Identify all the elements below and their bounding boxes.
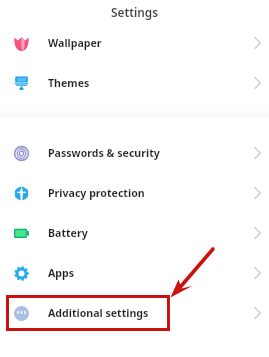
staticText: Privacy protection xyxy=(48,186,145,200)
button[interactable]: Apps xyxy=(0,253,269,293)
staticText: Battery xyxy=(48,226,88,240)
staticText: Settings xyxy=(111,4,159,20)
button[interactable]: Additional settings xyxy=(0,293,269,333)
button[interactable]: Themes xyxy=(0,63,269,103)
staticText: Themes xyxy=(48,76,90,90)
staticText: Wallpaper xyxy=(48,36,102,50)
button[interactable]: Privacy protection xyxy=(0,173,269,213)
staticText: Passwords & security xyxy=(48,146,160,160)
staticText: Additional settings xyxy=(48,306,149,320)
staticText: Apps xyxy=(48,266,75,280)
button[interactable]: Battery xyxy=(0,213,269,253)
button[interactable]: Passwords & security xyxy=(0,133,269,173)
button[interactable]: Wallpaper xyxy=(0,23,269,63)
